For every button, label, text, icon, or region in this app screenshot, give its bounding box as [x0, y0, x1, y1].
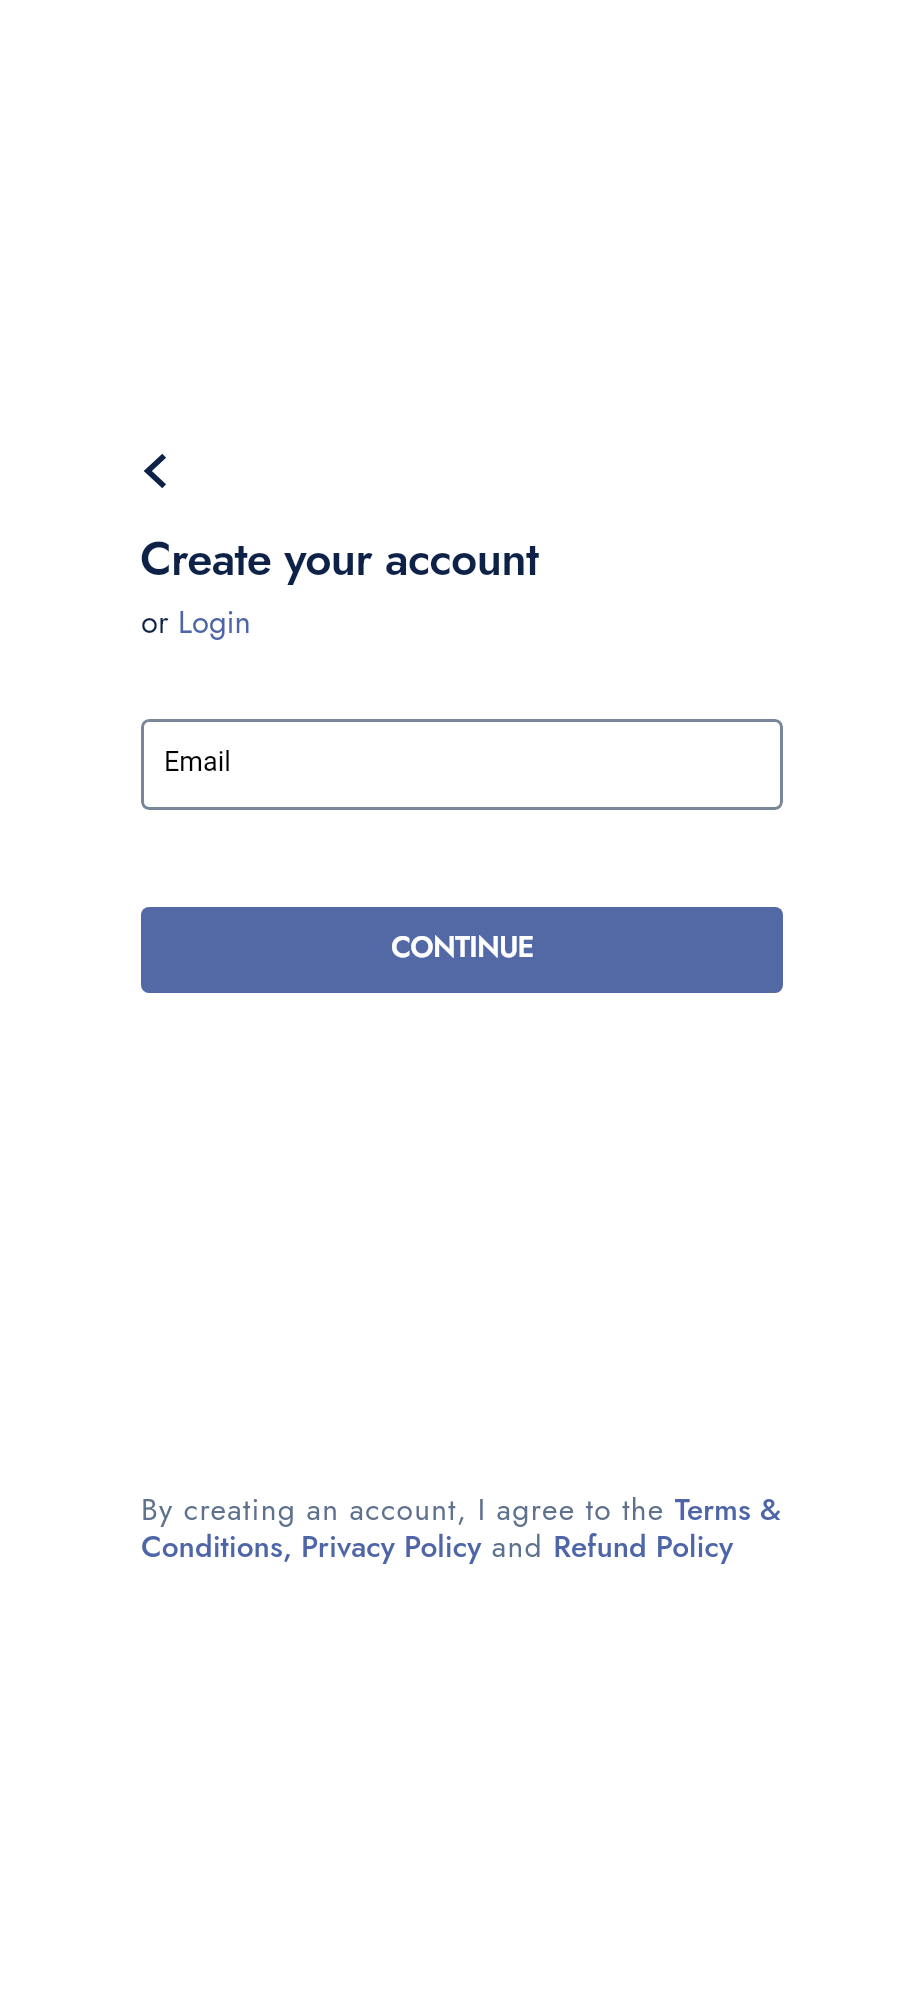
button[interactable]: Terms & Conditions — [670, 1492, 780, 1530]
button[interactable]: Refund Policy — [556, 1529, 738, 1567]
button[interactable]: Email — [141, 719, 783, 810]
staticText: or — [141, 600, 178, 645]
staticText: CONTINUE — [391, 926, 534, 968]
button[interactable]: Privacy Policy — [314, 1529, 486, 1567]
button[interactable]: Back — [126, 441, 186, 501]
button[interactable]: Terms & Conditions — [141, 1529, 311, 1567]
staticText: Email — [164, 746, 231, 778]
staticText: By creating an account, I agree to the T… — [141, 1488, 787, 1568]
staticText: Create your account — [140, 526, 539, 592]
button[interactable]: CONTINUE — [141, 907, 783, 993]
button[interactable]: Login — [178, 600, 251, 645]
